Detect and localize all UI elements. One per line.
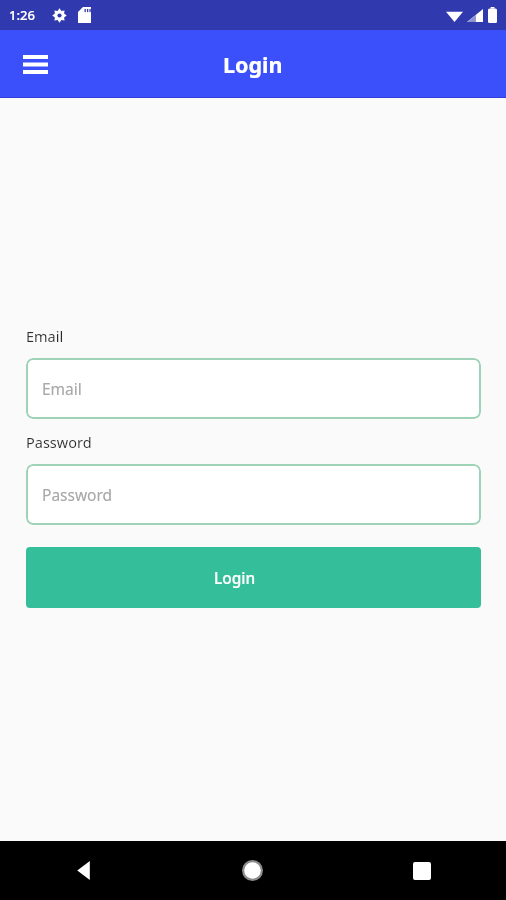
staticText: Password xyxy=(42,484,113,505)
button[interactable]: Email xyxy=(26,358,481,419)
staticText: 1:26 xyxy=(9,6,35,24)
staticText: Email xyxy=(42,378,82,399)
staticText: Password xyxy=(26,432,92,452)
button[interactable]: Back xyxy=(0,841,168,900)
staticText: Login xyxy=(214,567,294,588)
button[interactable]: Login xyxy=(26,547,481,608)
button[interactable]: Recent apps xyxy=(337,841,506,900)
button[interactable]: Open navigation menu xyxy=(12,41,58,87)
staticText: Email xyxy=(26,326,64,346)
button[interactable]: Home xyxy=(168,841,337,900)
button[interactable]: Password xyxy=(26,464,481,525)
staticText: Login xyxy=(223,50,283,79)
